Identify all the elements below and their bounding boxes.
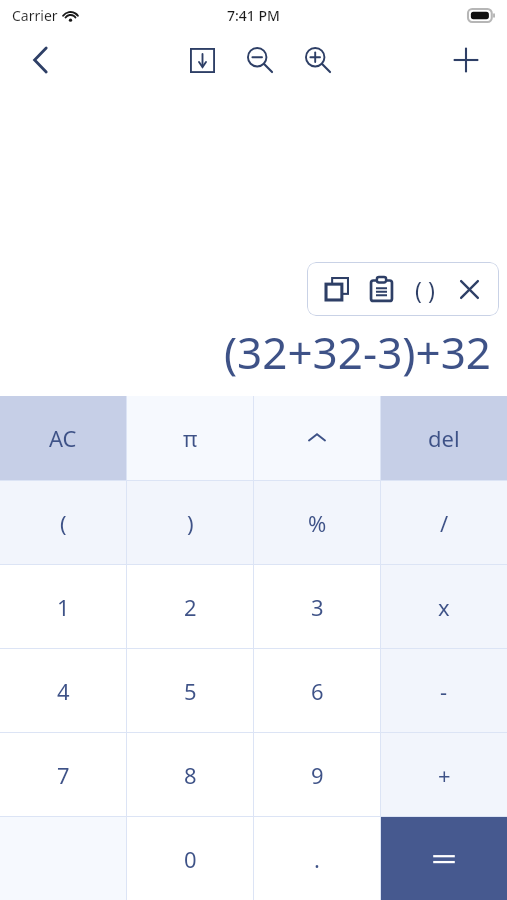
- button[interactable]: 7: [0, 733, 126, 816]
- button[interactable]: ( ): [403, 267, 447, 311]
- staticText: 2: [184, 592, 197, 622]
- button[interactable]: +: [381, 733, 507, 816]
- staticText: Carrier: [12, 6, 58, 25]
- staticText: /: [440, 508, 449, 538]
- staticText: del: [428, 423, 460, 453]
- button[interactable]: Zoom out: [238, 38, 282, 82]
- staticText: -: [440, 676, 448, 706]
- button[interactable]: %: [254, 481, 380, 564]
- button[interactable]: 1: [0, 565, 126, 648]
- staticText: ( ): [415, 274, 435, 305]
- staticText: ): [187, 508, 194, 538]
- button[interactable]: del: [381, 396, 507, 480]
- button[interactable]: 4: [0, 649, 126, 732]
- button[interactable]: 2: [127, 565, 253, 648]
- button[interactable]: 3: [254, 565, 380, 648]
- button[interactable]: Close: [447, 267, 491, 311]
- button[interactable]: Paste: [359, 267, 403, 311]
- button[interactable]: Back: [18, 37, 64, 83]
- staticText: 8: [184, 760, 197, 790]
- staticText: 5: [184, 676, 197, 706]
- button[interactable]: 9: [254, 733, 380, 816]
- staticText: 1: [57, 592, 70, 622]
- button[interactable]: (: [0, 481, 126, 564]
- staticText: %: [308, 508, 327, 538]
- staticText: (: [60, 508, 67, 538]
- staticText: 7:41 PM: [227, 6, 280, 25]
- staticText: +: [438, 760, 451, 790]
- button[interactable]: Save: [180, 38, 224, 82]
- button[interactable]: x: [381, 565, 507, 648]
- button[interactable]: 5: [127, 649, 253, 732]
- staticText: 7: [57, 760, 70, 790]
- button[interactable]: Add: [443, 37, 489, 83]
- staticText: 4: [57, 676, 70, 706]
- button[interactable]: π: [127, 396, 253, 480]
- button[interactable]: 0: [127, 817, 253, 900]
- staticText: 9: [311, 760, 324, 790]
- button[interactable]: Equals: [381, 817, 507, 900]
- staticText: x: [438, 592, 450, 622]
- button[interactable]: Copy: [315, 267, 359, 311]
- button[interactable]: AC: [0, 396, 126, 480]
- button[interactable]: Zoom in: [296, 38, 340, 82]
- button[interactable]: 8: [127, 733, 253, 816]
- staticText: 6: [311, 676, 324, 706]
- button[interactable]: -: [381, 649, 507, 732]
- staticText: AC: [49, 423, 77, 453]
- button[interactable]: .: [254, 817, 380, 900]
- button[interactable]: 6: [254, 649, 380, 732]
- staticText: .: [314, 844, 320, 874]
- button[interactable]: ): [127, 481, 253, 564]
- staticText: 0: [184, 844, 197, 874]
- button[interactable]: /: [381, 481, 507, 564]
- staticText: π: [183, 423, 198, 453]
- button[interactable]: [254, 396, 380, 480]
- staticText: 3: [311, 592, 324, 622]
- staticText: (32+32-3)+32: [0, 322, 491, 382]
